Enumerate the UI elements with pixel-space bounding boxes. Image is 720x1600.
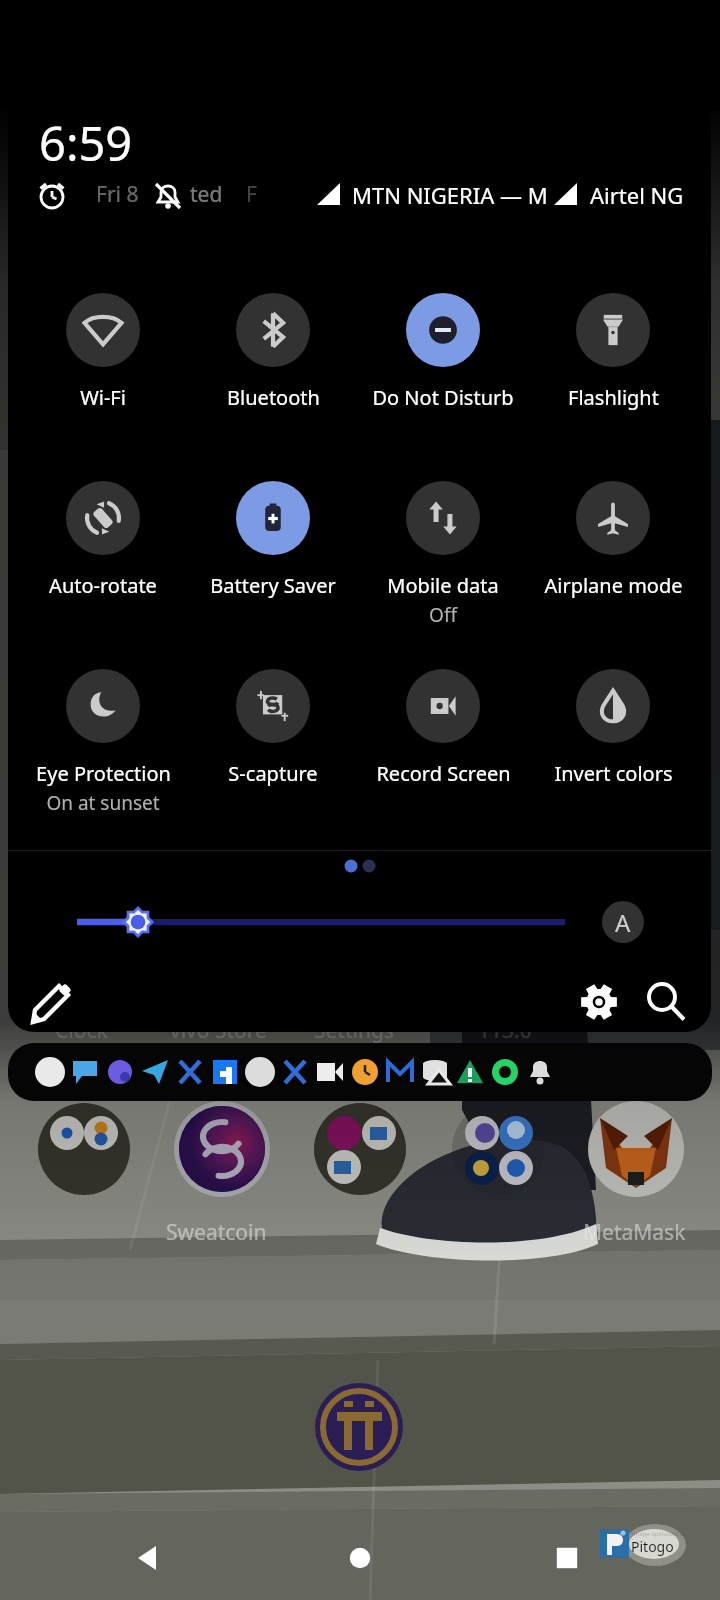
button[interactable]: Back: [120, 1528, 180, 1588]
staticText: image uploaded at: [632, 1530, 685, 1538]
staticText: Do Not Disturb: [372, 384, 514, 411]
staticText: Record Screen: [376, 760, 511, 787]
button[interactable]: Auto-rotate: [18, 468, 188, 599]
button[interactable]: Flashlight: [528, 280, 698, 411]
staticText: Settings: [314, 1016, 394, 1045]
staticText: Eye Protection: [36, 760, 171, 787]
button[interactable]: Edit tiles: [28, 977, 78, 1027]
staticText: On at sunset: [46, 790, 160, 816]
staticText: Battery Saver: [210, 572, 336, 599]
staticText: Fri 8: [96, 180, 139, 209]
staticText: vivo Store: [170, 1016, 267, 1045]
button[interactable]: Battery Saver: [188, 468, 358, 599]
staticText: Sweatcoin: [166, 1218, 267, 1247]
staticText: Clock: [55, 1016, 108, 1045]
staticText: MetaMask: [583, 1218, 686, 1247]
staticText: A: [615, 906, 631, 939]
staticText: Airplane mode: [544, 572, 683, 599]
button[interactable]: Airplane mode: [528, 468, 698, 599]
button[interactable]: Wi-Fi: [18, 280, 188, 411]
staticText: F: [246, 180, 257, 209]
button[interactable]: Invert colors: [528, 656, 698, 787]
staticText: Wi-Fi: [80, 384, 126, 411]
button[interactable]: Settings: [574, 977, 624, 1027]
button[interactable]: Search: [641, 977, 691, 1027]
button[interactable]: Home: [330, 1528, 390, 1588]
button[interactable]: Bluetooth: [188, 280, 358, 411]
button[interactable]: Record Screen: [358, 656, 528, 787]
button[interactable]: Auto brightness: [602, 901, 644, 943]
button[interactable]: [8, 1043, 712, 1101]
staticText: Bluetooth: [227, 384, 320, 411]
button[interactable]: Do Not Disturb: [358, 280, 528, 411]
staticText: MTN NIGERIA — M: [352, 180, 548, 210]
staticText: 6:59: [39, 111, 133, 175]
staticText: Off: [429, 602, 457, 628]
staticText: 113.0: [478, 1016, 532, 1045]
button[interactable]: Mobile data: [358, 468, 528, 628]
staticText: Airtel NG: [590, 180, 684, 210]
staticText: Invert colors: [554, 760, 673, 787]
button[interactable]: Recents: [537, 1528, 597, 1588]
button[interactable]: S-capture: [188, 656, 358, 787]
staticText: Pitogo: [631, 1537, 674, 1556]
staticText: Auto-rotate: [49, 572, 157, 599]
staticText: Flashlight: [568, 384, 659, 411]
staticText: ted: [190, 180, 223, 209]
button[interactable]: Eye Protection: [18, 656, 188, 816]
staticText: S-capture: [228, 760, 318, 787]
staticText: Mobile data: [387, 572, 499, 599]
